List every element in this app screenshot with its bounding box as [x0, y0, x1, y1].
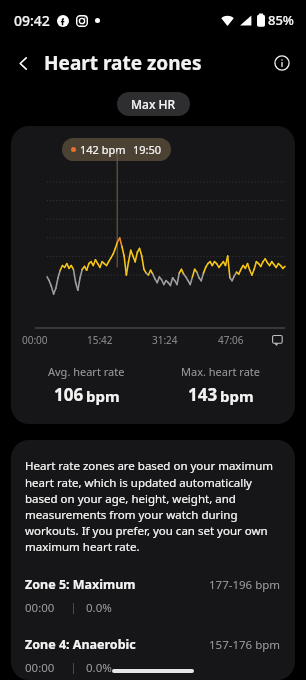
staticText: 09:42 — [14, 11, 50, 30]
button[interactable]: Expand chart — [271, 333, 285, 347]
staticText: 00:00 — [25, 660, 55, 676]
staticText: Avg. heart rate — [48, 364, 125, 379]
staticText: Heart rate zones are based on your maxim… — [25, 458, 281, 554]
staticText: 85% — [268, 11, 294, 29]
staticText: Zone 4: Anaerobic — [25, 636, 136, 653]
button[interactable]: Zone 4: Anaerobic — [25, 636, 281, 676]
button[interactable]: Back — [6, 46, 40, 80]
button[interactable]: Max HR — [117, 92, 190, 116]
button[interactable]: Zone 5: Maximum — [25, 576, 281, 616]
staticText: 0.0% — [86, 660, 112, 676]
staticText: 143 — [188, 383, 218, 406]
staticText: 31:24 — [152, 333, 178, 347]
staticText: bpm — [220, 386, 254, 406]
staticText: 00:00 — [25, 600, 55, 616]
staticText: 142 bpm — [80, 142, 126, 157]
staticText: 106 — [54, 383, 84, 406]
staticText: Zone 5: Maximum — [25, 576, 136, 593]
staticText: bpm — [86, 386, 120, 406]
staticText: 157-176 bpm — [209, 637, 281, 653]
staticText: Heart rate zones — [44, 50, 202, 76]
staticText: 19:50 — [133, 142, 162, 157]
button[interactable]: Information — [266, 47, 298, 79]
staticText: 177-196 bpm — [209, 577, 281, 593]
staticText: Max HR — [131, 96, 176, 112]
staticText: 47:06 — [218, 333, 244, 347]
staticText: 0.0% — [86, 600, 112, 616]
staticText: 15:42 — [87, 333, 113, 347]
button[interactable]: 142 bpm — [11, 126, 295, 424]
staticText: 00:00 — [22, 333, 48, 347]
staticText: Max. heart rate — [181, 364, 260, 379]
